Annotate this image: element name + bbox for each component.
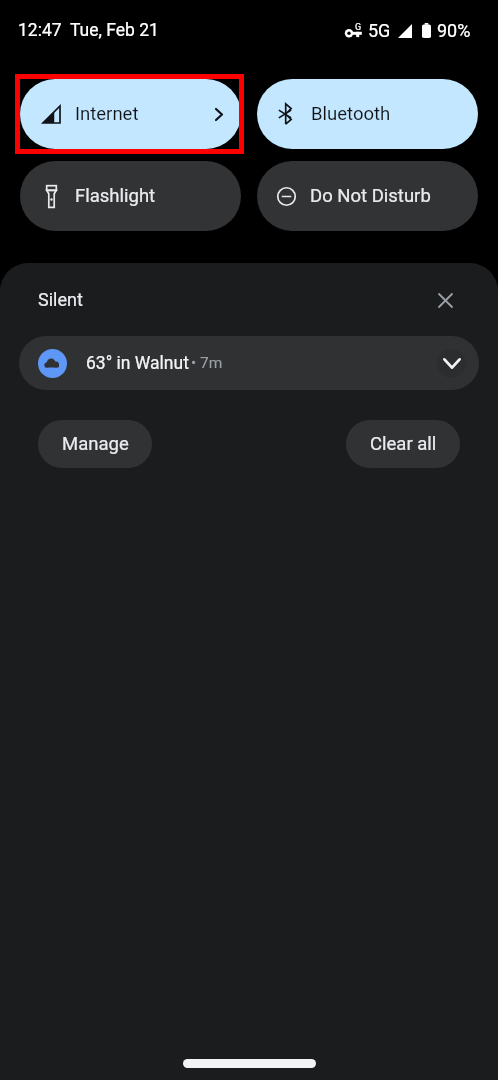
button[interactable]: Internet (20, 79, 241, 149)
button[interactable]: Clear all (346, 420, 460, 468)
button[interactable]: Bluetooth (257, 79, 478, 149)
button[interactable]: Flashlight (20, 161, 241, 231)
staticText: • 7m (191, 354, 223, 372)
staticText: 90% (437, 20, 471, 41)
staticText: Clear all (370, 433, 437, 455)
button[interactable]: Expand (437, 349, 466, 378)
staticText: 5G (368, 20, 391, 41)
button[interactable]: 63° in Walnut (19, 336, 479, 390)
button[interactable]: Do Not Disturb (257, 161, 478, 231)
staticText: Silent (38, 289, 83, 310)
staticText: Flashlight (75, 185, 156, 207)
button[interactable]: Manage (38, 420, 152, 468)
staticText: Do Not Disturb (310, 185, 431, 207)
staticText: Manage (62, 433, 129, 455)
staticText: 63° in Walnut (86, 353, 189, 374)
staticText: Bluetooth (311, 103, 391, 125)
staticText: Internet (75, 103, 139, 125)
staticText: 12:47 Tue, Feb 21 (18, 20, 159, 41)
staticText: G (355, 22, 362, 33)
button[interactable]: Close (432, 287, 458, 313)
